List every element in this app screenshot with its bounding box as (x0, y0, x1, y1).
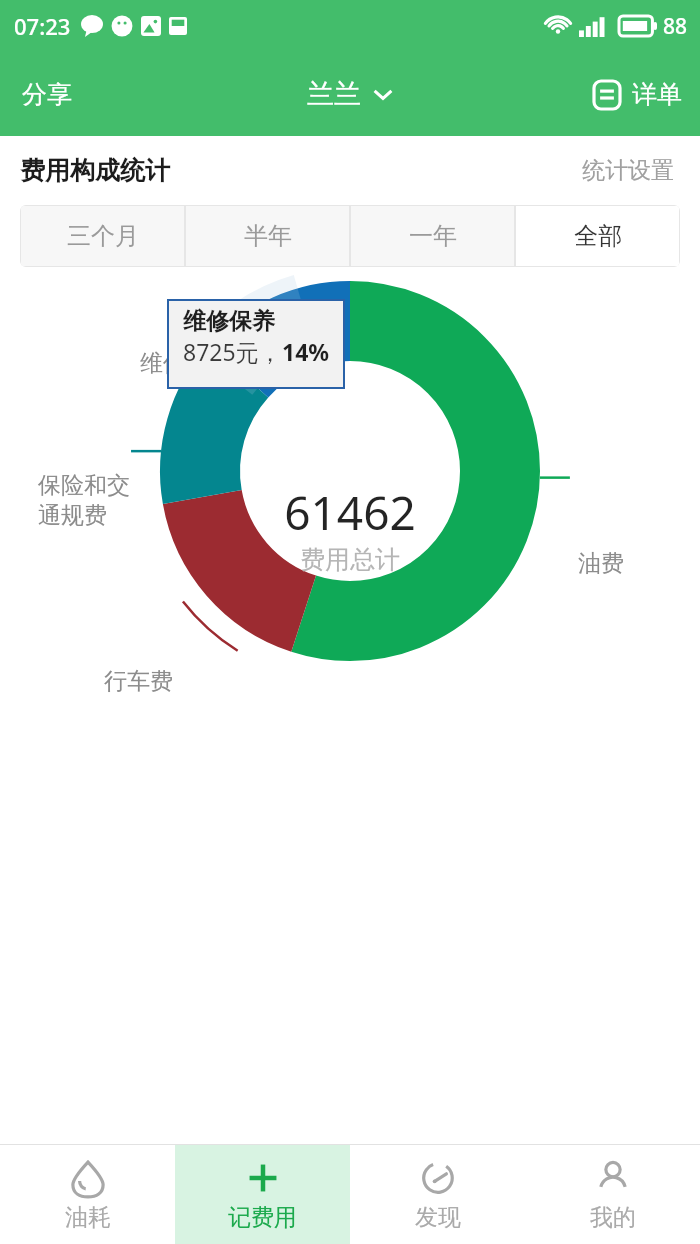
staticText: 07:23 (14, 11, 71, 41)
button[interactable]: 我的 (525, 1145, 700, 1244)
staticText: 14% (282, 336, 330, 367)
staticText: 三个月 (67, 221, 139, 251)
staticText: 保险和交 通规费 (38, 471, 130, 530)
staticText: 8725元， (183, 336, 282, 367)
button[interactable]: 兰兰 (295, 67, 405, 121)
staticText: 维修保养 (140, 349, 232, 378)
staticText: 油费 (578, 549, 624, 578)
staticText: 61462 (284, 481, 416, 544)
staticText: 分享 (22, 79, 72, 110)
button[interactable]: 全部 (516, 206, 679, 266)
staticText: 半年 (244, 221, 292, 251)
staticText: 费用总计 (300, 544, 400, 575)
button[interactable]: 统计设置 (576, 150, 680, 191)
staticText: 记费用 (228, 1203, 297, 1232)
staticText: 兰兰 (307, 77, 361, 111)
button[interactable]: 详单 (580, 65, 700, 124)
staticText: 维修保养 (183, 307, 275, 336)
staticText: 发现 (415, 1203, 461, 1232)
button[interactable]: 分享 (0, 63, 94, 126)
button[interactable]: 记费用 (175, 1145, 350, 1244)
button[interactable]: 油耗 (0, 1145, 175, 1244)
button[interactable]: 三个月 (21, 206, 184, 266)
staticText: 我的 (590, 1203, 636, 1232)
staticText: 全部 (574, 221, 622, 251)
button[interactable]: 一年 (351, 206, 514, 266)
button[interactable]: 半年 (186, 206, 349, 266)
other: 详单 (592, 80, 622, 110)
staticText: 费用构成统计 (20, 155, 170, 186)
staticText: 详单 (632, 79, 682, 110)
button[interactable]: 发现 (350, 1145, 525, 1244)
staticText: 统计设置 (582, 156, 674, 185)
staticText: 行车费 (104, 667, 173, 696)
staticText: 油耗 (65, 1203, 111, 1232)
staticText: 一年 (409, 221, 457, 251)
staticText: 88 (663, 12, 688, 41)
